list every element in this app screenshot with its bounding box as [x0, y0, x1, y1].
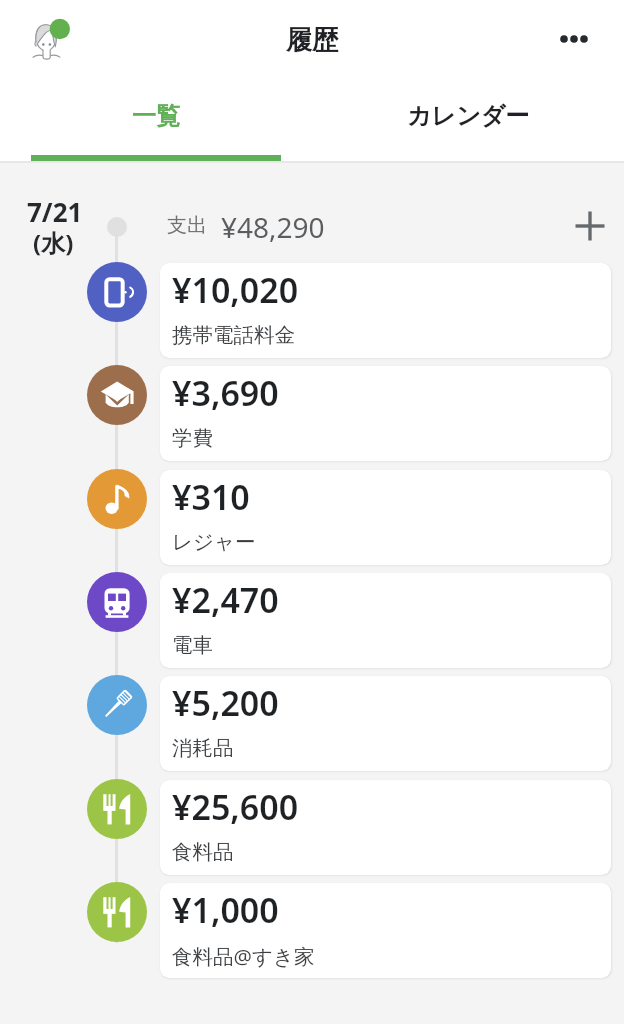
staticText: ¥25,600 — [172, 784, 299, 830]
staticText: 食料品@すき家 — [172, 942, 315, 970]
staticText: ¥1,000 — [172, 887, 279, 933]
staticText: レジャー — [172, 529, 256, 555]
button[interactable]: 学費 — [87, 365, 147, 425]
staticText: 7/21 — [27, 194, 83, 229]
button[interactable]: 一覧 — [0, 88, 312, 144]
staticText: 履歴 — [286, 24, 338, 57]
staticText: (水) — [33, 226, 74, 259]
staticText: ¥310 — [172, 474, 250, 520]
staticText: ¥10,020 — [172, 267, 299, 313]
button[interactable]: 食料品@すき家 — [87, 882, 147, 942]
button[interactable]: 電車 — [87, 572, 147, 632]
button[interactable]: 食料品 — [87, 779, 147, 839]
button[interactable]: ¥3,690 — [160, 366, 611, 461]
button[interactable]: ¥10,020 — [160, 263, 611, 358]
button[interactable]: 消耗品 — [87, 675, 147, 735]
staticText: ¥5,200 — [172, 680, 279, 726]
button[interactable]: ¥25,600 — [160, 780, 611, 875]
button[interactable]: ¥5,200 — [160, 676, 611, 771]
button[interactable]: ¥310 — [160, 470, 611, 565]
button[interactable]: ¥2,470 — [160, 573, 611, 668]
staticText: ¥2,470 — [172, 577, 279, 623]
button[interactable]: ¥1,000 — [160, 883, 611, 978]
button[interactable]: More options — [551, 16, 597, 62]
staticText: 携帯電話料金 — [172, 322, 295, 348]
staticText: 食料品 — [172, 839, 234, 865]
button[interactable]: Add entry — [571, 207, 609, 245]
staticText: 消耗品 — [172, 735, 234, 761]
button[interactable]: レジャー — [87, 469, 147, 529]
staticText: ¥3,690 — [172, 370, 279, 416]
button[interactable]: Profile — [22, 14, 74, 66]
staticText: 一覧 — [132, 101, 180, 131]
staticText: カレンダー — [407, 101, 530, 131]
staticText: 支出 — [167, 213, 207, 238]
staticText: 学費 — [172, 425, 213, 451]
staticText: ¥48,290 — [221, 208, 325, 246]
button[interactable]: カレンダー — [312, 88, 624, 144]
button[interactable]: 携帯電話料金 — [87, 262, 147, 322]
staticText: 電車 — [172, 632, 213, 658]
